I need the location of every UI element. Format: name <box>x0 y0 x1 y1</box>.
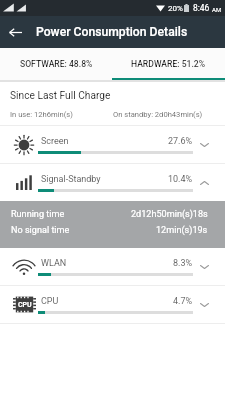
button[interactable]: Expand <box>193 248 225 285</box>
staticText: 8:46 <box>193 3 210 13</box>
staticText: SOFTWARE: 48.8% <box>20 59 93 69</box>
staticText: 20% <box>168 4 183 13</box>
staticText: Power Consumption Details <box>36 25 188 39</box>
staticText: Since Last Full Charge <box>10 90 111 102</box>
button[interactable]: Expand <box>193 126 225 163</box>
staticText: Running time <box>11 209 131 220</box>
staticText: Screen <box>41 136 171 147</box>
staticText: 2d12h50min(s)18s <box>131 209 208 220</box>
button[interactable]: Screen <box>0 126 225 163</box>
staticText: 27.6% <box>168 136 193 147</box>
button[interactable]: Expand <box>193 286 225 323</box>
staticText: HARDWARE: 51.2% <box>131 59 206 69</box>
staticText: In use: 12h6min(s) <box>10 110 73 119</box>
staticText: WLAN <box>41 258 176 269</box>
staticText: No signal time <box>11 225 156 236</box>
staticText: 8.3% <box>173 258 193 269</box>
staticText: CPU <box>41 296 176 307</box>
button[interactable]: HARDWARE: 51.2% <box>112 48 225 80</box>
button[interactable]: Signal-Standby <box>0 164 225 201</box>
staticText: AM <box>212 6 222 13</box>
button[interactable]: CPU <box>0 286 225 323</box>
staticText: 4.7% <box>173 296 193 307</box>
button[interactable]: SOFTWARE: 48.8% <box>0 48 112 80</box>
staticText: 10.4% <box>168 174 193 185</box>
staticText: 12min(s)19s <box>156 225 208 236</box>
button[interactable]: Collapse <box>193 164 225 201</box>
staticText: On standby: 2d0h43min(s) <box>113 110 203 119</box>
button[interactable]: Back <box>0 16 30 48</box>
staticText: Signal-Standby <box>41 174 171 185</box>
button[interactable]: WLAN <box>0 248 225 285</box>
staticText: CPU <box>18 301 32 309</box>
